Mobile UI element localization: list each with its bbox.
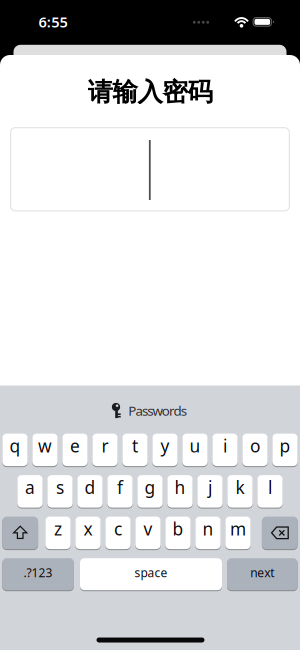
staticText: p bbox=[279, 434, 290, 457]
button[interactable] bbox=[2, 516, 38, 550]
button[interactable]: i bbox=[212, 433, 238, 467]
staticText: y bbox=[160, 434, 169, 457]
staticText: .?123 bbox=[24, 565, 53, 581]
button[interactable]: e bbox=[62, 433, 88, 467]
staticText: s bbox=[56, 476, 64, 499]
button[interactable]: z bbox=[45, 516, 71, 550]
staticText: next bbox=[250, 565, 274, 581]
staticText: v bbox=[143, 517, 152, 540]
button[interactable]: l bbox=[257, 475, 283, 508]
staticText: i bbox=[223, 434, 227, 457]
staticText: o bbox=[250, 434, 260, 457]
staticText: q bbox=[9, 434, 20, 457]
button[interactable]: v bbox=[135, 516, 161, 550]
staticText: k bbox=[235, 476, 244, 499]
button[interactable]: space bbox=[80, 558, 222, 591]
staticText: h bbox=[174, 476, 185, 499]
button[interactable]: p bbox=[272, 433, 298, 467]
button[interactable]: t bbox=[122, 433, 148, 467]
button[interactable]: next bbox=[227, 558, 298, 591]
staticText: space bbox=[134, 565, 167, 581]
button[interactable]: c bbox=[105, 516, 131, 550]
button[interactable] bbox=[262, 516, 298, 550]
button[interactable]: u bbox=[182, 433, 208, 467]
button[interactable]: s bbox=[47, 475, 73, 508]
staticText: t bbox=[132, 434, 138, 457]
button[interactable]: x bbox=[75, 516, 101, 550]
button[interactable]: q bbox=[2, 433, 28, 467]
button[interactable]: f bbox=[107, 475, 133, 508]
button[interactable]: .?123 bbox=[2, 558, 74, 591]
button[interactable]: g bbox=[137, 475, 163, 508]
staticText: j bbox=[208, 476, 212, 499]
button[interactable]: r bbox=[92, 433, 118, 467]
staticText: m bbox=[230, 517, 246, 540]
staticText: c bbox=[114, 517, 122, 540]
button[interactable]: a bbox=[17, 475, 43, 508]
button[interactable]: k bbox=[227, 475, 253, 508]
staticText: f bbox=[117, 476, 123, 499]
staticText: u bbox=[189, 434, 200, 457]
staticText: n bbox=[202, 517, 213, 540]
staticText: e bbox=[70, 434, 80, 457]
staticText: 6:55 bbox=[38, 12, 68, 32]
staticText: Passwords bbox=[128, 402, 187, 419]
staticText: r bbox=[101, 434, 108, 457]
staticText: l bbox=[268, 476, 272, 499]
button[interactable]: m bbox=[225, 516, 251, 550]
button[interactable]: y bbox=[152, 433, 178, 467]
button[interactable]: h bbox=[167, 475, 193, 508]
staticText: d bbox=[84, 476, 95, 499]
button[interactable]: o bbox=[242, 433, 268, 467]
staticText: x bbox=[83, 517, 92, 540]
button[interactable]: n bbox=[195, 516, 221, 550]
button[interactable]: Passwords bbox=[111, 402, 187, 419]
button[interactable]: w bbox=[32, 433, 58, 467]
staticText: z bbox=[54, 517, 62, 540]
button[interactable]: b bbox=[165, 516, 191, 550]
staticText: w bbox=[38, 434, 52, 457]
button[interactable]: j bbox=[197, 475, 223, 508]
staticText: g bbox=[144, 476, 155, 499]
button[interactable]: d bbox=[77, 475, 103, 508]
staticText: b bbox=[172, 517, 183, 540]
staticText: a bbox=[25, 476, 35, 499]
staticText: 请输入密码 bbox=[87, 76, 212, 107]
button[interactable] bbox=[10, 127, 290, 212]
